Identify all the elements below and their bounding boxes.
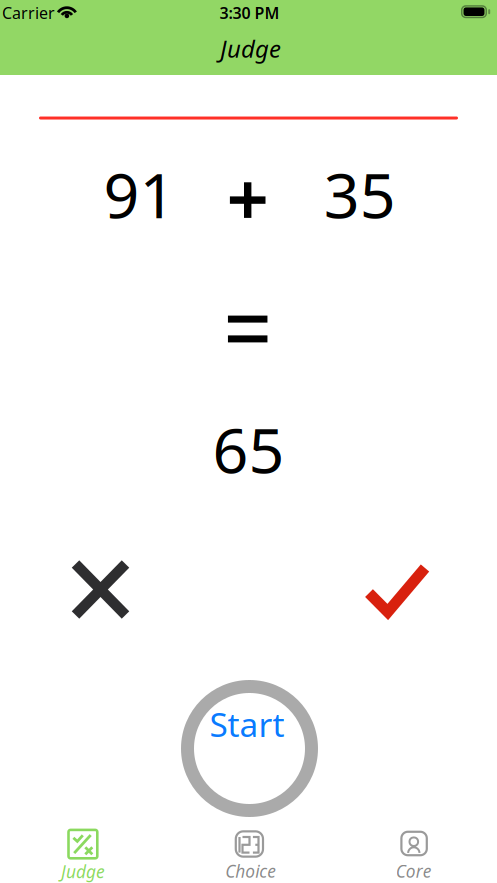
button[interactable]: Start: [181, 680, 318, 817]
staticText: 3:30 PM: [219, 2, 279, 23]
staticText: 65: [212, 407, 284, 491]
button[interactable]: Judge: [40, 815, 125, 883]
staticText: 35: [324, 152, 396, 236]
button[interactable]: Correct: [369, 568, 425, 612]
button[interactable]: Wrong: [75, 564, 125, 615]
staticText: Carrier: [2, 2, 55, 23]
staticText: Choice: [225, 859, 276, 882]
staticText: Judge: [61, 860, 105, 883]
staticText: Core: [396, 859, 432, 882]
button[interactable]: Choice: [207, 815, 292, 883]
staticText: Judge: [220, 32, 281, 64]
staticText: 91: [103, 152, 175, 236]
button[interactable]: Core: [370, 815, 455, 883]
staticText: Start: [209, 702, 284, 746]
